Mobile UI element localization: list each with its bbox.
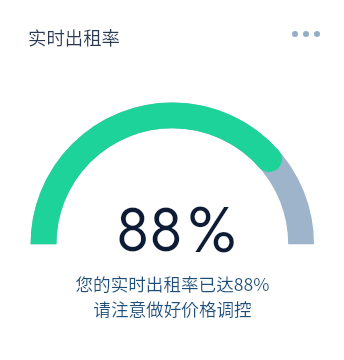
button[interactable]: More options xyxy=(284,22,328,46)
staticText: % xyxy=(188,184,237,276)
other: Occupancy gauge, 88 percent xyxy=(0,0,344,360)
staticText: 您的实时出租率已达88% 请注意做好价格调控 xyxy=(75,271,270,321)
button[interactable]: 实时出租率 xyxy=(22,18,114,45)
staticText: 实时出租率 xyxy=(28,24,120,51)
staticText: 88 xyxy=(116,186,183,274)
